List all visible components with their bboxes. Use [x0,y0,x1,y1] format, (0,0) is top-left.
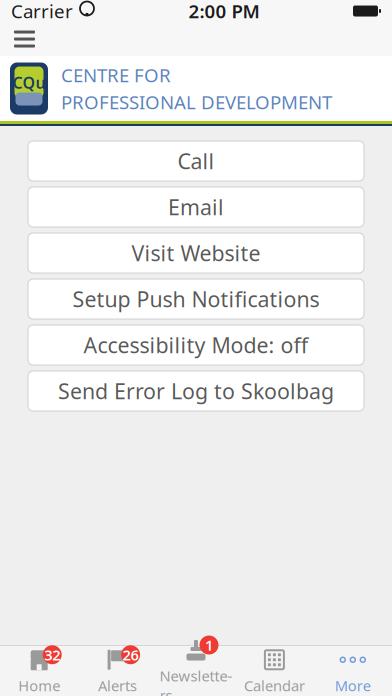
staticText: 32 [44,645,60,664]
staticText: Send Error Log to Skoolbag [58,377,334,405]
staticText: Calendar [244,676,305,695]
staticText: 26 [123,645,139,664]
button[interactable]: Setup Push Notifications [28,279,364,319]
staticText: CQu [12,72,45,93]
button[interactable]: Visit Website [28,233,364,273]
staticText: Call [177,147,214,175]
staticText: Setup Push Notifications [72,285,319,313]
staticText: Carrier [11,0,73,23]
button[interactable]: More [314,646,392,696]
staticText: PROFESSIONAL DEVELOPMENT [61,89,332,114]
button[interactable]: 32 [0,646,78,696]
staticText: Accessibility Mode: off [83,331,308,359]
staticText: CENTRE FOR [61,63,171,87]
staticText: Alerts [98,676,137,695]
button[interactable]: Send Error Log to Skoolbag [28,371,364,411]
staticText: Visit Website [131,239,260,267]
button[interactable]: Call [28,141,364,181]
staticText: Email [168,193,224,221]
button[interactable]: Calendar [235,646,314,696]
staticText: 1 [205,635,213,655]
button[interactable]: Menu [2,22,47,56]
staticText: Newsletters [159,666,232,696]
staticText: 2:00 PM [188,0,259,23]
button[interactable]: 1 [157,646,235,696]
staticText: Home [18,676,60,695]
button[interactable]: Email [28,187,364,227]
button[interactable]: 26 [78,646,157,696]
button[interactable]: Accessibility Mode: off [28,325,364,365]
staticText: More [335,676,371,695]
